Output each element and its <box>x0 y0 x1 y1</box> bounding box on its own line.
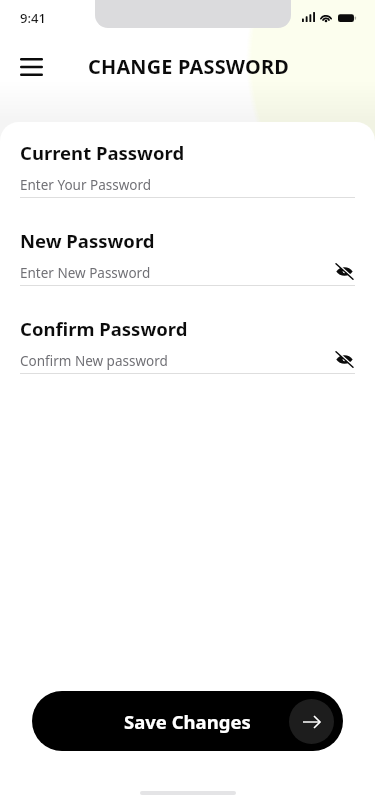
button[interactable]: Toggle password visibility <box>331 346 357 372</box>
button[interactable]: Toggle password visibility <box>331 258 357 284</box>
button[interactable]: Save Changes <box>32 691 343 751</box>
staticText: Current Password <box>20 140 185 165</box>
button[interactable]: Menu <box>9 45 53 89</box>
staticText: CHANGE PASSWORD <box>88 53 290 80</box>
staticText: Enter New Password <box>20 264 151 282</box>
staticText: Enter Your Password <box>20 176 152 194</box>
staticText: Save Changes <box>124 709 251 734</box>
staticText: New Password <box>20 228 155 253</box>
staticText: Confirm New password <box>20 352 168 370</box>
staticText: 9:41 <box>20 9 46 27</box>
staticText: Confirm Password <box>20 316 188 341</box>
